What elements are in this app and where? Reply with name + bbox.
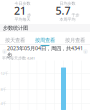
staticText: ‹ — [3, 48, 5, 55]
button[interactable]: Next day — [83, 49, 88, 54]
staticText: 21 — [14, 3, 26, 18]
staticText: 平均每天 — [14, 17, 30, 22]
staticText: 日均步数 — [59, 1, 75, 6]
button[interactable]: 按周查看 — [30, 32, 60, 44]
staticText: 平均每天步数 4341 — [2, 55, 35, 61]
staticText: 千步 — [71, 13, 79, 18]
staticText: 按周查看 — [35, 37, 55, 44]
staticText: 今日步数 — [14, 1, 30, 6]
staticText: 按天查看 — [5, 37, 25, 44]
staticText: › — [84, 48, 86, 55]
staticText: 8千 — [0, 87, 6, 92]
staticText: 2023年05月04日，周四，共4341步 — [7, 45, 83, 58]
staticText: 按月查看 — [65, 37, 85, 44]
staticText: 12千 — [0, 71, 8, 76]
staticText: 5.7 — [55, 3, 70, 18]
staticText: 步数统计图 — [3, 25, 28, 31]
button[interactable]: 按月查看 — [60, 32, 90, 44]
staticText: 步 — [27, 13, 31, 18]
staticText: 本周平均 — [59, 17, 75, 22]
staticText: 4千 — [0, 101, 6, 106]
button[interactable]: Previous day — [2, 49, 7, 54]
button[interactable]: 按天查看 — [0, 32, 30, 44]
